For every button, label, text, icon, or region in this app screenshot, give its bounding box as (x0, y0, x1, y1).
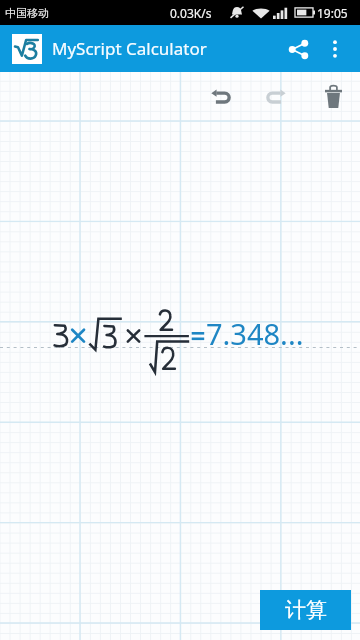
button[interactable]: Redo (253, 74, 299, 119)
button[interactable]: More options (316, 30, 354, 68)
staticText: 计算 (285, 597, 327, 623)
staticText: MyScript Calculator (52, 37, 207, 60)
button[interactable]: Undo (197, 74, 243, 119)
button[interactable]: Share (278, 29, 318, 69)
button[interactable]: Clear (310, 74, 356, 119)
staticText: 19:05 (317, 5, 348, 21)
button[interactable]: 计算 (260, 590, 351, 630)
staticText: 中国移动 (5, 6, 49, 20)
staticText: 0.03K/s (170, 5, 212, 21)
staticText: 7.348... (206, 314, 304, 353)
